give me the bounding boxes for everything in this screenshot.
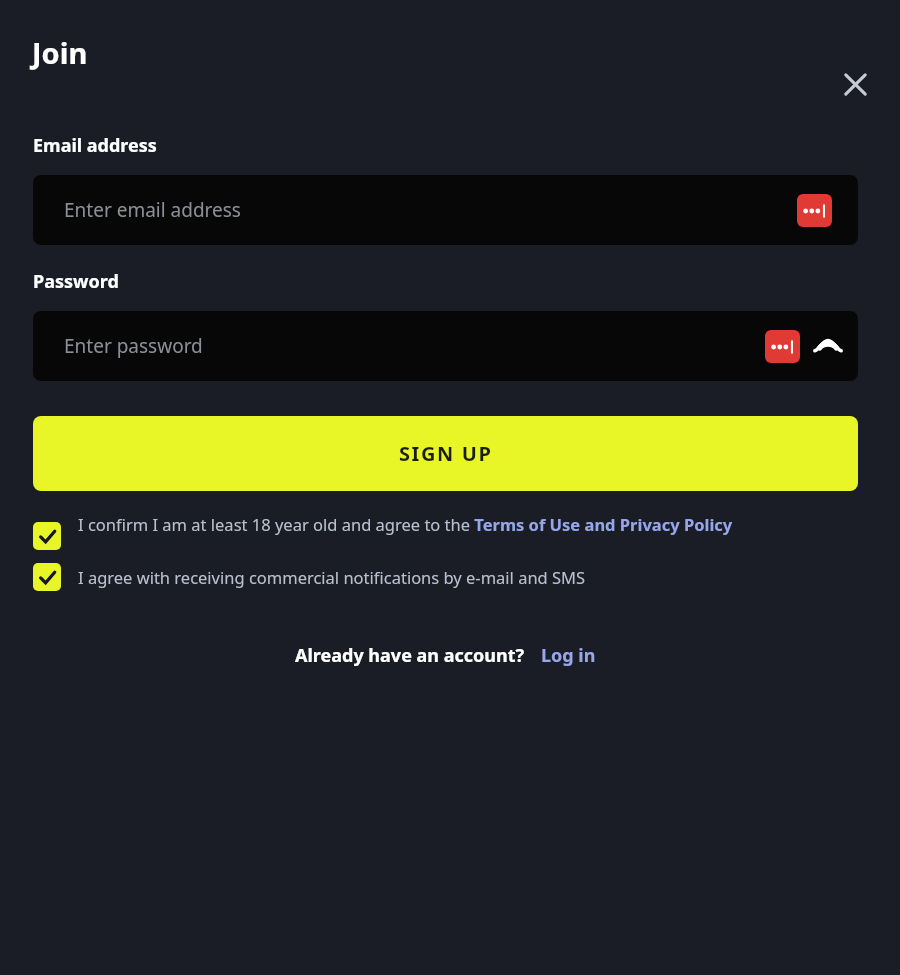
staticText: Log in: [541, 643, 596, 668]
button[interactable]: Checked: [33, 513, 858, 541]
button[interactable]: Checked: [33, 522, 61, 550]
button[interactable]: SIGN UP: [33, 416, 858, 491]
staticText: Enter password: [64, 333, 203, 359]
staticText: SIGN UP: [399, 440, 493, 467]
button[interactable]: Password manager: [765, 330, 800, 363]
button[interactable]: Close: [833, 62, 877, 106]
button[interactable]: Checked: [33, 563, 61, 591]
staticText: Password: [33, 269, 119, 294]
button[interactable]: Show password: [809, 327, 847, 365]
staticText: Email address: [33, 133, 157, 158]
staticText: Enter email address: [64, 197, 241, 223]
staticText: Already have an account?: [295, 643, 525, 668]
button[interactable]: Enter password: [33, 311, 858, 381]
staticText: Join: [32, 33, 88, 72]
button[interactable]: Password manager: [797, 194, 832, 227]
button[interactable]: Log in: [541, 643, 596, 668]
button[interactable]: Checked: [33, 563, 858, 591]
staticText: I agree with receiving commercial notifi…: [78, 566, 586, 588]
staticText: I confirm I am at least 18 year old and …: [78, 513, 733, 535]
button[interactable]: Enter email address: [33, 175, 858, 245]
